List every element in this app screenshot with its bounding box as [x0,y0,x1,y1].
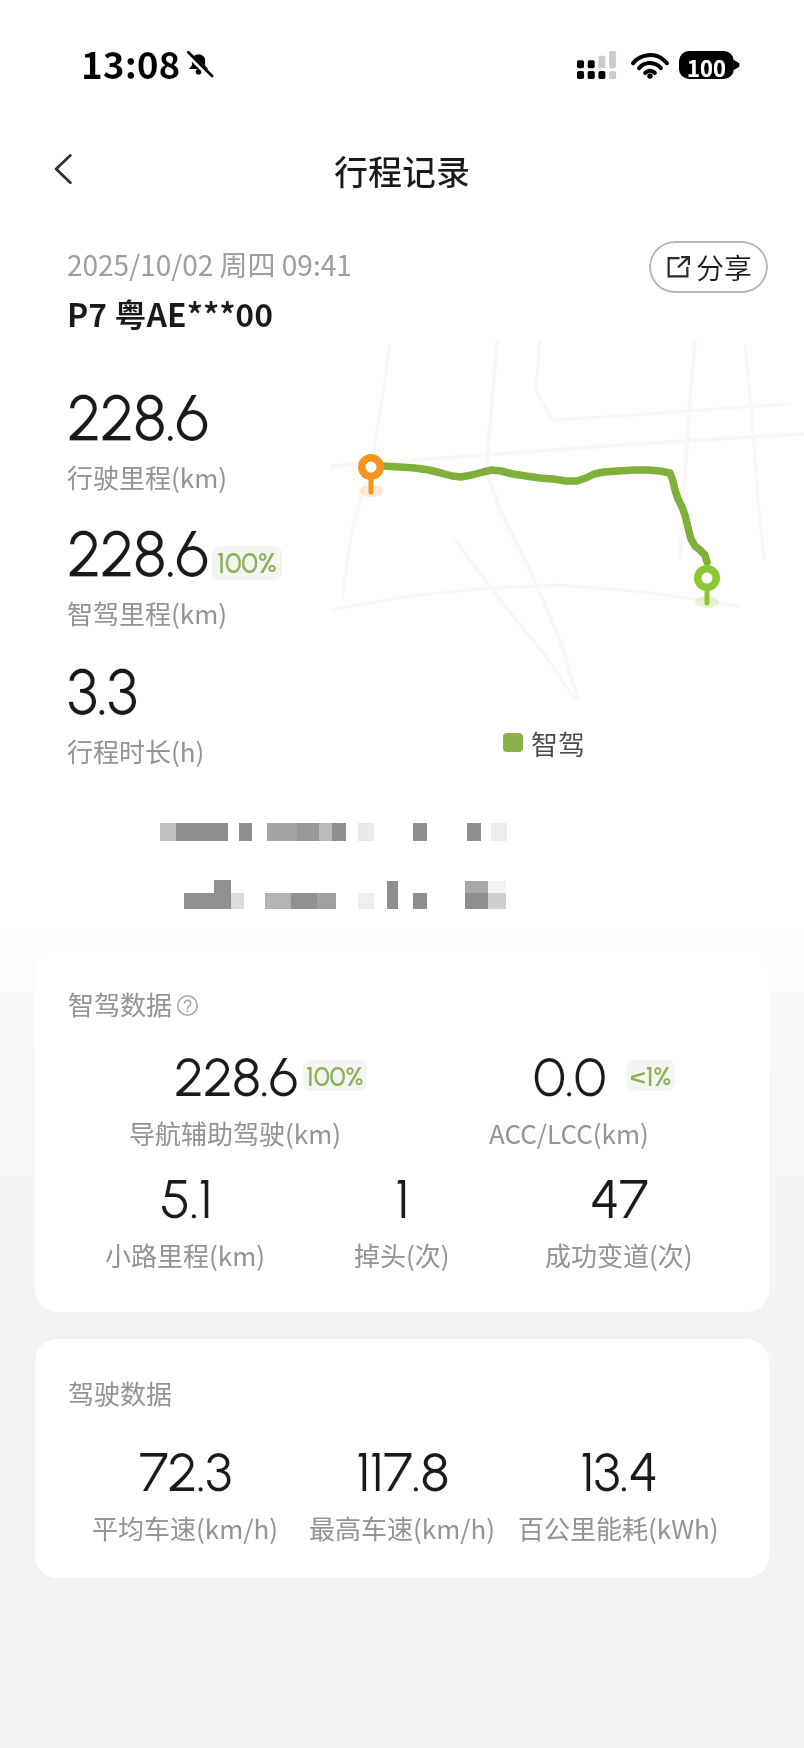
staticText: 行驶里程(km) [67,458,228,496]
staticText: 117.8 [356,1439,449,1505]
staticText: 成功变道(次) [545,1236,693,1274]
staticText: 百公里能耗(kWh) [518,1509,719,1547]
staticText: 47 [590,1166,648,1232]
staticText: 行程时长(h) [67,732,205,770]
staticText: 100% [306,1060,364,1091]
staticText: 2025/10/02 周四 09:41 [67,244,352,285]
staticText: 100 [687,51,726,79]
staticText: <1% [630,1060,672,1091]
staticText: 小路里程(km) [105,1236,266,1274]
button[interactable]: 分享 [649,241,768,293]
staticText: 1 [395,1166,409,1232]
staticText: 13:08 [81,36,181,90]
staticText: 0.0 [533,1044,606,1110]
staticText: 分享 [696,247,753,288]
staticText: 掉头(次) [354,1236,450,1274]
staticText: 平均车速(km/h) [92,1509,278,1547]
staticText: 智驾 [531,724,585,763]
staticText: ACC/LCC(km) [489,1114,649,1152]
staticText: 13.4 [580,1439,658,1505]
button[interactable]: Back [30,138,98,200]
staticText: 智驾里程(km) [67,594,228,632]
staticText: P7 粤AE***00 [67,290,274,336]
staticText: 228.6 [67,516,209,592]
staticText: 228.6 [174,1044,298,1110]
staticText: 72.3 [139,1439,232,1505]
staticText: 100% [217,546,277,580]
staticText: 3.3 [67,654,137,730]
staticText: 智驾数据 [68,985,173,1023]
staticText: 最高车速(km/h) [309,1509,495,1547]
staticText: 行程记录 [334,146,470,195]
staticText: 导航辅助驾驶(km) [129,1114,342,1152]
staticText: 228.6 [67,380,209,456]
staticText: 驾驶数据 [68,1374,173,1412]
staticText: 5.1 [160,1166,212,1232]
